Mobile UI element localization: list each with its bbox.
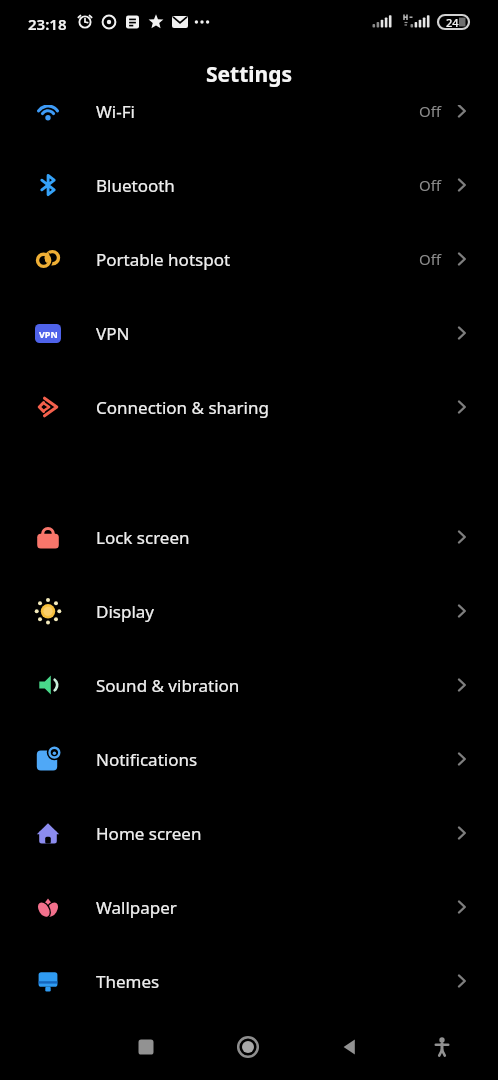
button[interactable]: Home screen (0, 796, 498, 870)
button[interactable] (430, 1035, 454, 1059)
button[interactable]: Wi-Fi (0, 105, 498, 148)
staticText: Lock screen (96, 526, 190, 549)
staticText: VPN (96, 322, 130, 345)
staticText: Off (419, 249, 442, 269)
staticText: Connection & sharing (96, 396, 269, 419)
button[interactable]: Connection & sharing (0, 370, 498, 444)
button[interactable] (134, 1035, 158, 1059)
staticText: Display (96, 600, 154, 623)
button[interactable]: Bluetooth (0, 148, 498, 222)
staticText: Themes (96, 970, 160, 993)
button[interactable]: Portable hotspot (0, 222, 498, 296)
staticText: Sound & vibration (96, 674, 240, 697)
staticText: Wi-Fi (96, 105, 135, 123)
staticText: Home screen (96, 822, 202, 845)
staticText: Off (419, 175, 442, 195)
button[interactable]: Themes (0, 944, 498, 1010)
staticText: Wallpaper (96, 896, 177, 919)
staticText: Off (419, 105, 442, 121)
button[interactable]: Sound & vibration (0, 648, 498, 722)
staticText: VPN (39, 328, 58, 340)
button[interactable]: Notifications (0, 722, 498, 796)
button[interactable] (338, 1035, 362, 1059)
staticText: 24 (446, 15, 459, 30)
button[interactable]: VPN (0, 296, 498, 370)
staticText: Bluetooth (96, 174, 175, 197)
button[interactable]: Display (0, 574, 498, 648)
staticText: 23:18 (28, 14, 67, 34)
staticText: Notifications (96, 748, 198, 771)
staticText: Settings (206, 60, 293, 89)
staticText: Portable hotspot (96, 248, 231, 271)
button[interactable] (236, 1035, 260, 1059)
button[interactable]: Wallpaper (0, 870, 498, 944)
button[interactable]: Lock screen (0, 500, 498, 574)
